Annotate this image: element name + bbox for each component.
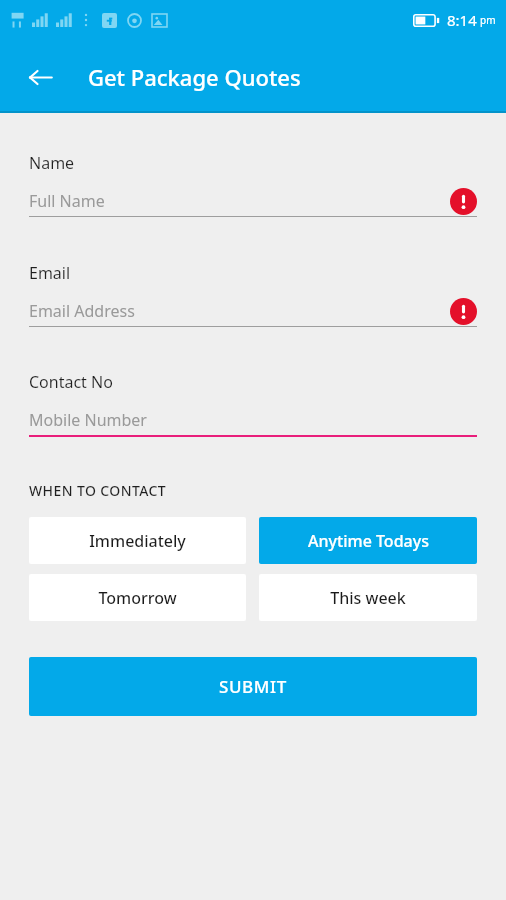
staticText: SUBMIT (219, 675, 287, 698)
staticText: Contact No (29, 371, 113, 393)
button[interactable]: Anytime Todays (259, 517, 477, 564)
button[interactable]: SUBMIT (29, 657, 477, 716)
other: Error (450, 298, 477, 325)
staticText: Mobile Number (29, 409, 147, 431)
staticText: Name (29, 152, 75, 174)
button[interactable]: Immediately (29, 517, 246, 564)
staticText: pm (480, 13, 496, 27)
other: Error (450, 188, 477, 215)
staticText: Anytime Todays (308, 530, 429, 552)
staticText: Email (29, 262, 71, 284)
staticText: This week (330, 587, 406, 609)
staticText: Email Address (29, 300, 135, 322)
staticText: Tomorrow (98, 587, 177, 609)
button[interactable]: Back (18, 55, 62, 99)
button[interactable]: Full Name (29, 187, 477, 217)
staticText: Full Name (29, 190, 105, 212)
staticText: Immediately (89, 530, 186, 552)
button[interactable]: This week (259, 574, 477, 621)
staticText: WHEN TO CONTACT (29, 481, 167, 500)
button[interactable]: Mobile Number (29, 406, 477, 437)
button[interactable]: Email Address (29, 297, 477, 327)
staticText: Get Package Quotes (88, 62, 301, 92)
button[interactable]: Tomorrow (29, 574, 246, 621)
staticText: 8:14 (447, 10, 477, 30)
